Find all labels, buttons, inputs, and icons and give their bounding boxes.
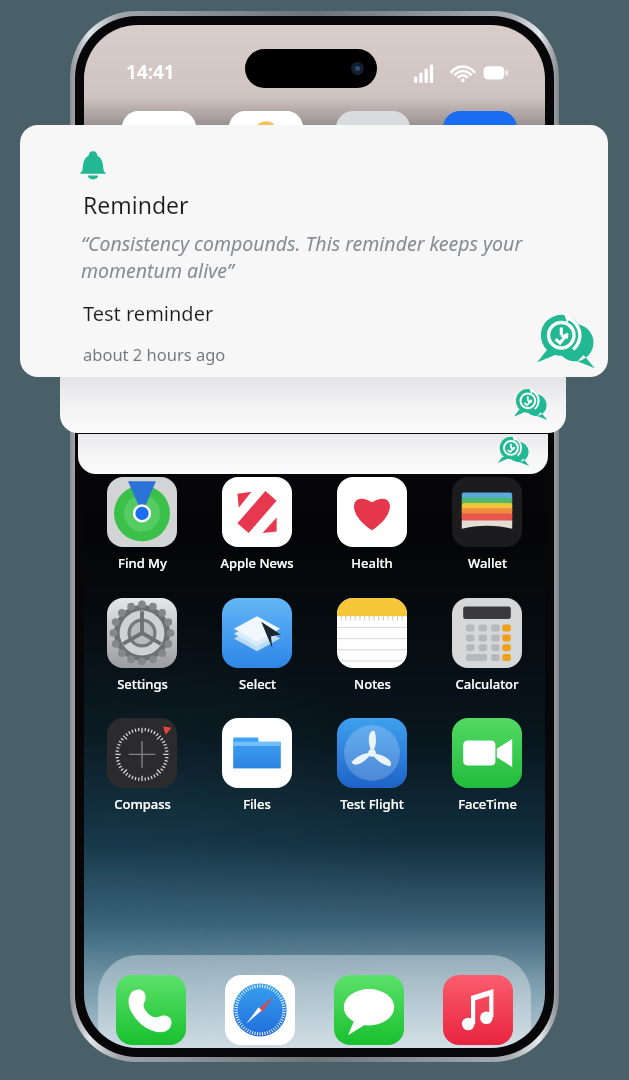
button[interactable]: Wallet <box>445 477 529 572</box>
staticText: Compass <box>114 795 171 813</box>
button[interactable] <box>60 377 566 433</box>
staticText: FaceTime <box>458 795 517 813</box>
staticText: Notes <box>354 675 391 693</box>
staticText: Wallet <box>468 554 507 572</box>
staticText: Settings <box>117 675 168 693</box>
button[interactable]: Compass <box>100 718 184 813</box>
staticText: “Consistency compounds. This reminder ke… <box>81 230 531 284</box>
button[interactable]: FaceTime <box>445 718 529 813</box>
staticText: Select <box>239 675 276 693</box>
staticText: Health <box>351 554 393 572</box>
staticText: Reminder <box>83 189 189 220</box>
button[interactable]: Health <box>330 477 414 572</box>
staticText: Test Flight <box>340 795 404 813</box>
button[interactable] <box>78 434 548 474</box>
button[interactable]: Files <box>215 718 299 813</box>
button[interactable]: Find My <box>100 477 184 572</box>
button[interactable]: Calculator <box>445 598 529 693</box>
button[interactable]: Safari <box>225 975 295 1045</box>
staticText: Find My <box>118 554 167 572</box>
staticText: 14:41 <box>126 59 175 85</box>
staticText: Apple News <box>220 554 294 572</box>
button[interactable]: Select <box>215 598 299 693</box>
button[interactable]: Messages <box>334 975 404 1045</box>
staticText: Files <box>243 795 271 813</box>
button[interactable]: Music <box>443 975 513 1045</box>
button[interactable]: Notes <box>330 598 414 693</box>
button[interactable]: Test Flight <box>330 718 414 813</box>
staticText: about 2 hours ago <box>83 343 226 365</box>
button[interactable]: Apple News <box>215 477 299 572</box>
staticText: Calculator <box>455 675 519 693</box>
button[interactable]: App logo <box>534 308 596 370</box>
button[interactable]: Phone <box>116 975 186 1045</box>
button[interactable]: Settings <box>100 598 184 693</box>
staticText: Test reminder <box>83 300 214 327</box>
button[interactable]: Reminder <box>20 125 608 377</box>
